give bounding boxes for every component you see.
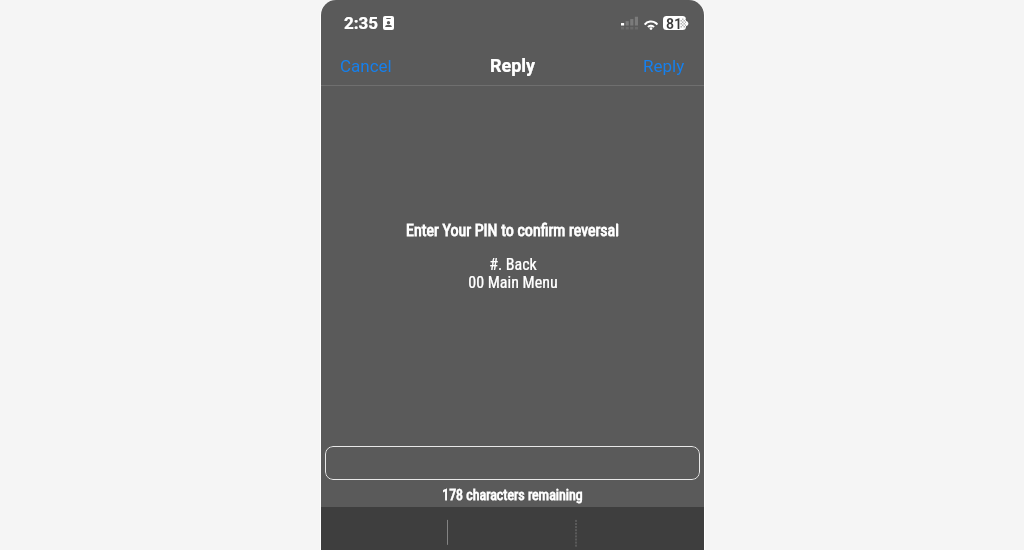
button[interactable]: Suggestion 1 — [321, 507, 448, 550]
button[interactable]: Reply — [624, 45, 704, 86]
staticText: 178 characters remaining — [321, 487, 704, 503]
staticText: Cancel — [340, 56, 392, 76]
staticText: 2:35 — [344, 13, 379, 33]
staticText: Enter Your PIN to confirm reversal — [406, 221, 619, 240]
staticText: Reply — [643, 56, 685, 76]
button[interactable]: Cancel — [321, 45, 411, 86]
button[interactable]: Reply message input field — [325, 446, 700, 480]
staticText: Reply — [490, 55, 536, 76]
staticText: #. Back 00 Main Menu — [468, 255, 558, 292]
staticText: 81 — [666, 16, 683, 30]
